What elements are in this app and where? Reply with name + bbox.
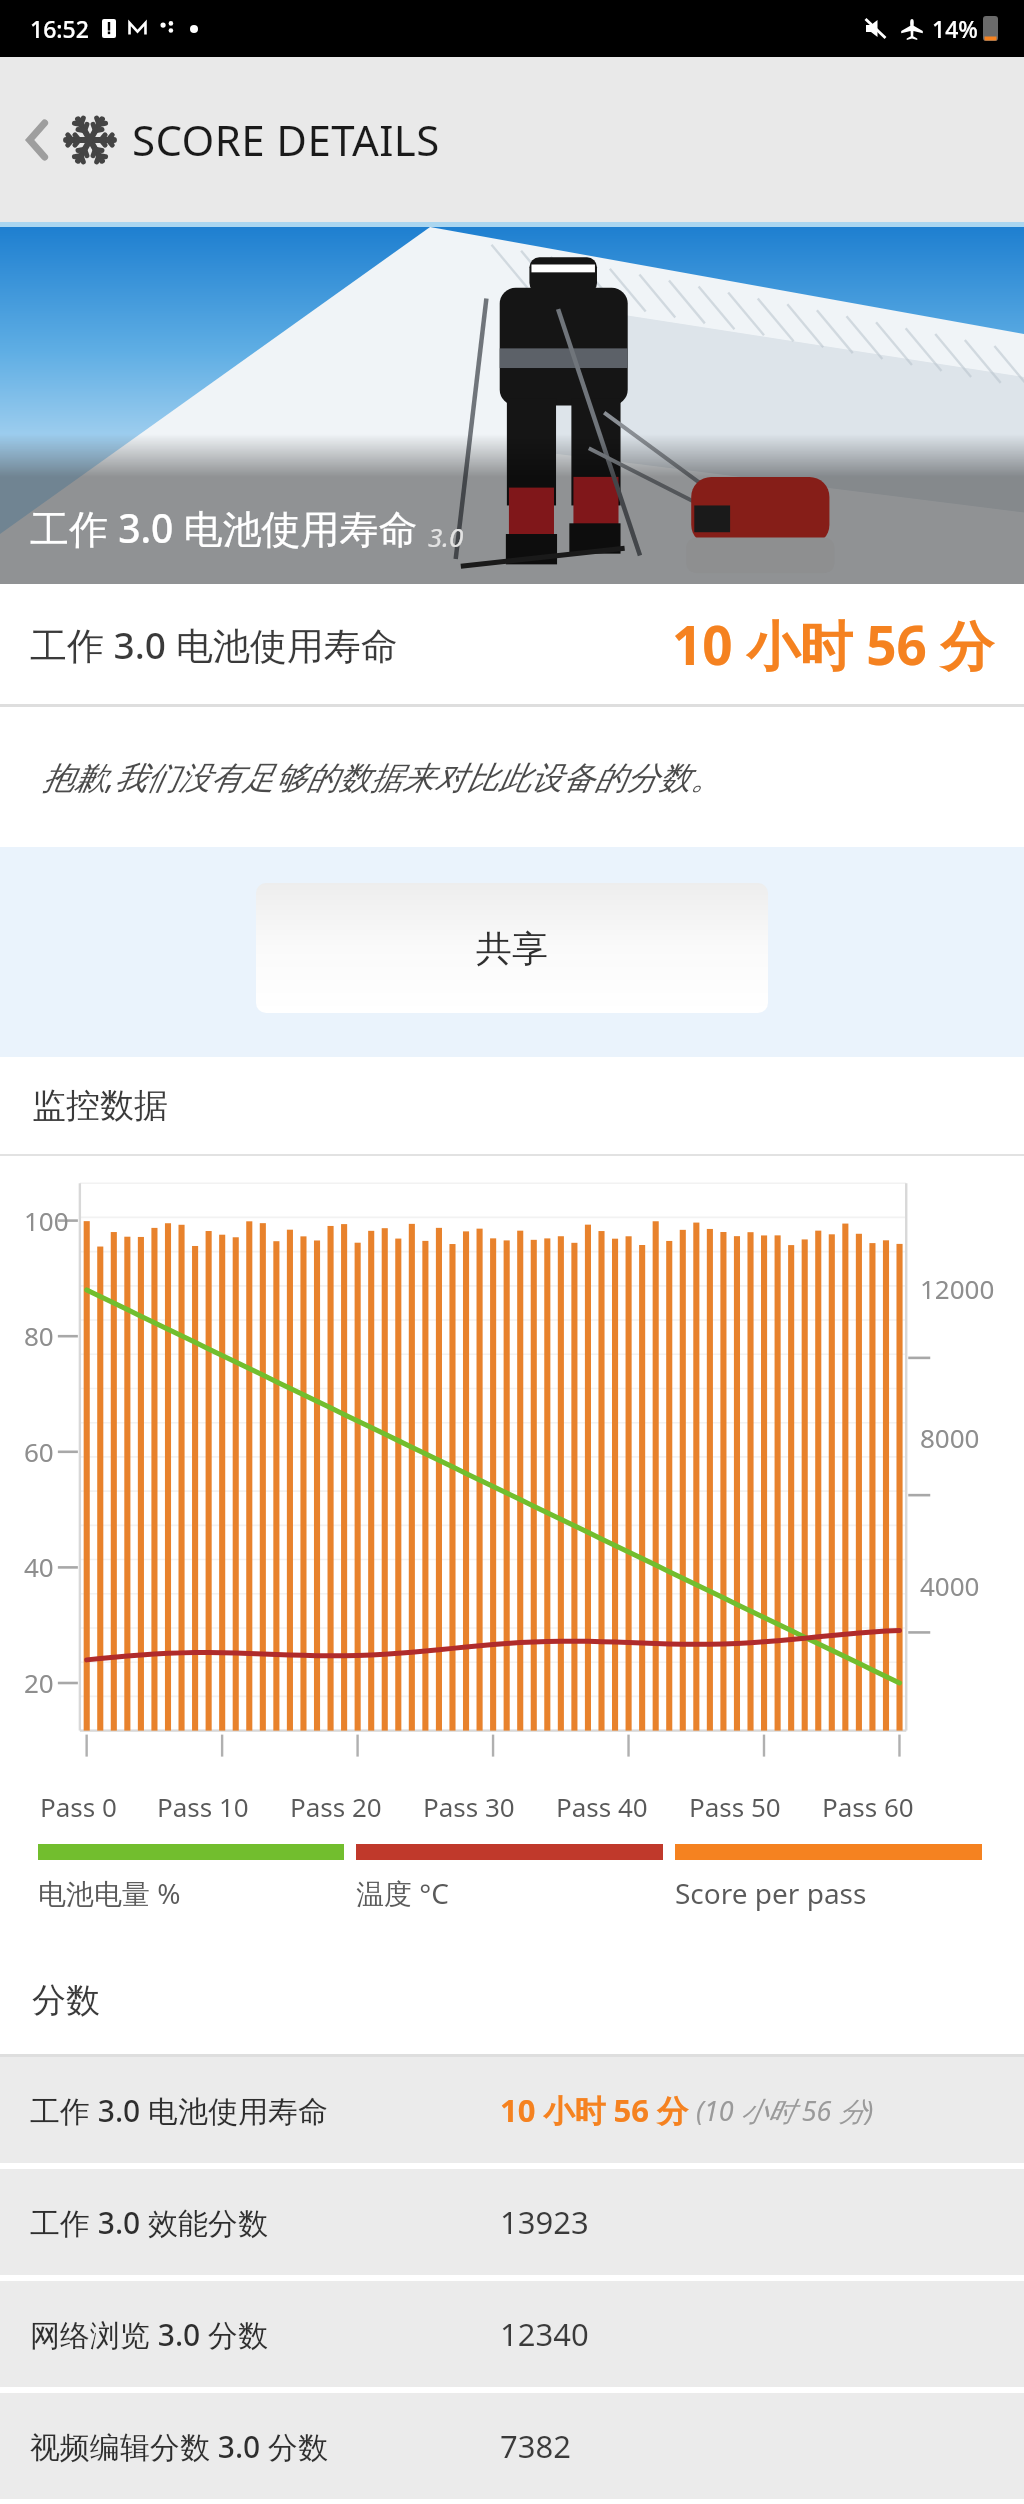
staticText: 4000 (920, 1568, 980, 1603)
staticText: 工作 3.0 效能分数 (30, 2202, 500, 2243)
staticText: 分数 (32, 1979, 100, 2022)
button[interactable]: 工作 3.0 电池使用寿命 (0, 2057, 1024, 2163)
staticText: 20 (24, 1665, 54, 1700)
staticText: 温度 °C (356, 1874, 449, 1912)
staticText: Score per pass (675, 1874, 867, 1912)
staticText: 工作 3.0 电池使用寿命 (30, 619, 398, 670)
staticText: 10 小时 56 分 (500, 2089, 689, 2131)
staticText: 3.0 (428, 519, 464, 554)
staticText: Pass 40 (556, 1789, 648, 1824)
staticText: 视频编辑分数 3.0 分数 (30, 2426, 500, 2467)
staticText: 7382 (500, 2425, 571, 2467)
staticText: Pass 50 (689, 1789, 781, 1824)
staticText: 60 (24, 1434, 54, 1469)
staticText: 网络浏览 3.0 分数 (30, 2314, 500, 2355)
staticText: 100 (24, 1203, 69, 1238)
staticText: 13923 (500, 2201, 589, 2243)
staticText: Pass 0 (40, 1789, 117, 1824)
staticText: Pass 20 (290, 1789, 382, 1824)
button[interactable]: 视频编辑分数 3.0 分数 (0, 2393, 1024, 2499)
staticText: 共享 (476, 926, 548, 971)
staticText: 80 (24, 1318, 54, 1353)
staticText: 8000 (920, 1420, 980, 1455)
button[interactable]: 工作 3.0 效能分数 (0, 2169, 1024, 2275)
staticText: 40 (24, 1549, 54, 1584)
button[interactable]: 共享 (256, 883, 768, 1013)
button[interactable]: 网络浏览 3.0 分数 (0, 2281, 1024, 2387)
staticText: Pass 60 (822, 1789, 914, 1824)
staticText: 电池电量 % (38, 1874, 181, 1912)
staticText: 12340 (500, 2313, 589, 2355)
staticText: SCORE DETAILS (132, 111, 440, 168)
staticText: 10 小时 56 分 (672, 608, 994, 680)
staticText: (10 小时 56 分) (689, 2092, 874, 2129)
button[interactable]: Back (16, 118, 60, 162)
staticText: Pass 10 (157, 1789, 249, 1824)
staticText: Pass 30 (423, 1789, 515, 1824)
staticText: 抱歉,我们没有足够的数据来对比此设备的分数。 (42, 755, 723, 799)
staticText: 16:52 (30, 13, 89, 44)
staticText: 监控数据 (32, 1084, 168, 1127)
staticText: 工作 3.0 电池使用寿命 (30, 501, 418, 554)
staticText: 12000 (920, 1271, 995, 1306)
staticText: 14% (932, 13, 978, 44)
staticText: 工作 3.0 电池使用寿命 (30, 2090, 500, 2131)
